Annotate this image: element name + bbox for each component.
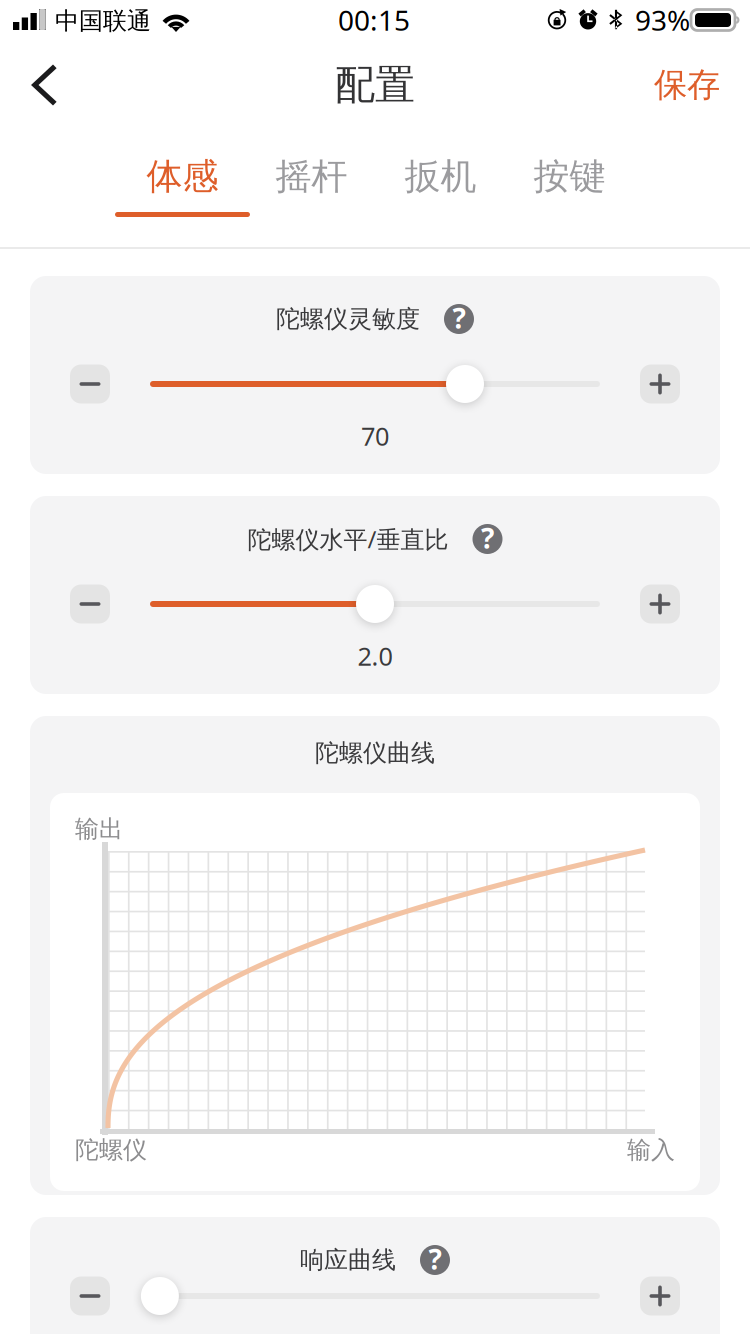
button[interactable]: 返回: [0, 47, 82, 123]
button[interactable]: 减少: [70, 584, 110, 623]
staticText: 93%: [635, 1, 690, 39]
staticText: 配置: [335, 60, 415, 109]
button[interactable]: 帮助: [420, 1245, 450, 1275]
button[interactable]: 帮助: [444, 304, 474, 334]
staticText: ?: [452, 299, 465, 337]
button[interactable]: 按键: [505, 123, 634, 247]
staticText: 输入: [627, 1135, 675, 1165]
staticText: 摇杆: [275, 154, 347, 199]
button[interactable]: 摇杆: [247, 123, 376, 247]
staticText: 陀螺仪水平/垂直比: [247, 523, 448, 555]
staticText: 陀螺仪灵敏度: [276, 304, 420, 334]
button[interactable]: 增加: [640, 1276, 680, 1315]
staticText: ?: [428, 1240, 441, 1278]
button[interactable]: 帮助: [472, 524, 502, 554]
button[interactable]: 增加: [640, 584, 680, 623]
button[interactable]: 保存: [630, 47, 750, 123]
button[interactable]: 减少: [70, 1276, 110, 1315]
staticText: 2.0: [357, 639, 392, 673]
button[interactable]: 扳机: [376, 123, 505, 247]
button[interactable]: 减少: [70, 364, 110, 403]
staticText: 按键: [533, 154, 605, 199]
staticText: 陀螺仪曲线: [315, 738, 435, 768]
staticText: 陀螺仪: [75, 1135, 147, 1165]
button[interactable]: 增加: [640, 364, 680, 403]
staticText: 保存: [654, 64, 720, 105]
button[interactable]: 体感: [118, 123, 247, 247]
staticText: 响应曲线: [300, 1245, 396, 1275]
staticText: 00:15: [338, 1, 410, 39]
staticText: 扳机: [404, 154, 476, 199]
staticText: 体感: [146, 154, 218, 199]
staticText: 70: [361, 419, 389, 453]
staticText: 输出: [75, 814, 123, 844]
staticText: 中国联通: [55, 6, 151, 36]
staticText: ?: [481, 519, 494, 557]
